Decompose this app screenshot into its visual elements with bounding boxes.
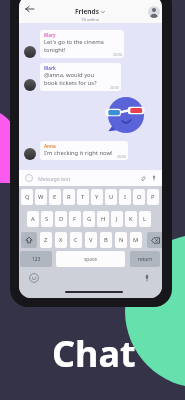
staticText: Mary (44, 32, 56, 38)
button[interactable]: Z (40, 232, 52, 248)
button[interactable]: M (130, 232, 142, 248)
staticText: tonight! (44, 46, 66, 54)
button[interactable]: Backspace (147, 232, 162, 248)
staticText: S (45, 215, 49, 223)
button[interactable]: I (119, 189, 131, 205)
staticText: 20:05 (110, 85, 119, 90)
button[interactable]: Anna (40, 141, 128, 160)
button[interactable]: E (49, 189, 61, 205)
button[interactable]: F (69, 211, 81, 227)
staticText: Q (25, 193, 30, 201)
staticText: X (59, 236, 63, 244)
staticText: @anna, would you (44, 71, 95, 79)
staticText: Z (44, 236, 48, 244)
button[interactable]: N (115, 232, 127, 248)
staticText: Friends (75, 7, 99, 16)
button[interactable]: P (147, 189, 159, 205)
staticText: C (74, 236, 78, 244)
staticText: U (109, 193, 114, 201)
button[interactable]: Profile (148, 6, 160, 18)
button[interactable]: Emoji (25, 174, 33, 182)
button[interactable]: G (83, 211, 95, 227)
other: Backspace (151, 236, 160, 245)
staticText: V (89, 236, 93, 244)
staticText: E (53, 193, 57, 201)
button[interactable]: Q (21, 189, 33, 205)
button[interactable]: L (139, 211, 151, 227)
staticText: J (116, 215, 118, 223)
button[interactable]: Y (91, 189, 103, 205)
staticText: Mark (44, 65, 56, 71)
staticText: N (119, 236, 124, 244)
button[interactable]: A (27, 211, 39, 227)
button[interactable]: R (63, 189, 75, 205)
button[interactable]: O (133, 189, 145, 205)
staticText: R (67, 193, 71, 201)
staticText: Chat (52, 329, 136, 378)
staticText: book tickets for us? (44, 79, 97, 87)
staticText: space (84, 256, 97, 263)
staticText: Anna (44, 143, 56, 149)
staticText: D (59, 215, 64, 223)
staticText: 15 online (81, 17, 100, 23)
staticText: Y (95, 193, 99, 201)
staticText: G (87, 215, 92, 223)
staticText: B (104, 236, 108, 244)
staticText: K (129, 215, 133, 223)
staticText: return (138, 256, 153, 263)
staticText: L (143, 215, 147, 223)
button[interactable]: Shift (21, 232, 37, 248)
button[interactable]: J (111, 211, 123, 227)
button[interactable]: Back (25, 6, 34, 12)
staticText: H (101, 215, 106, 223)
button[interactable]: Mark (40, 63, 121, 91)
button[interactable]: D (55, 211, 67, 227)
button[interactable]: 123 (20, 251, 52, 267)
button[interactable]: K (125, 211, 137, 227)
staticText: W (38, 193, 44, 201)
button[interactable]: Sticker (108, 97, 144, 133)
staticText: P (151, 193, 155, 201)
staticText: M (133, 236, 139, 244)
staticText: 123 (32, 256, 41, 263)
staticText: 20:06 (117, 154, 126, 159)
button[interactable]: H (97, 211, 109, 227)
button[interactable]: B (100, 232, 112, 248)
button[interactable]: space (56, 251, 125, 267)
staticText: A (31, 215, 35, 223)
button[interactable]: S (41, 211, 53, 227)
staticText: F (73, 215, 77, 223)
staticText: T (81, 193, 85, 201)
staticText: Let's go to the cinema (44, 38, 104, 46)
staticText: I'm checking it right now! (44, 149, 113, 157)
button[interactable]: U (105, 189, 117, 205)
button[interactable]: Attach file (139, 174, 147, 182)
staticText: I (124, 193, 126, 201)
button[interactable]: Dictation (142, 273, 152, 283)
staticText: O (137, 193, 142, 201)
button[interactable]: W (35, 189, 47, 205)
other: Shift (25, 236, 33, 244)
button[interactable]: X (55, 232, 67, 248)
button[interactable]: Emoji keyboard (29, 273, 39, 283)
button[interactable]: V (85, 232, 97, 248)
button[interactable]: T (77, 189, 89, 205)
staticText: Message text (38, 175, 71, 182)
button[interactable]: C (70, 232, 82, 248)
staticText: 20:04 (113, 52, 122, 57)
button[interactable]: return (130, 251, 160, 267)
button[interactable]: Mary (40, 30, 124, 58)
button[interactable]: Voice message (150, 174, 158, 182)
